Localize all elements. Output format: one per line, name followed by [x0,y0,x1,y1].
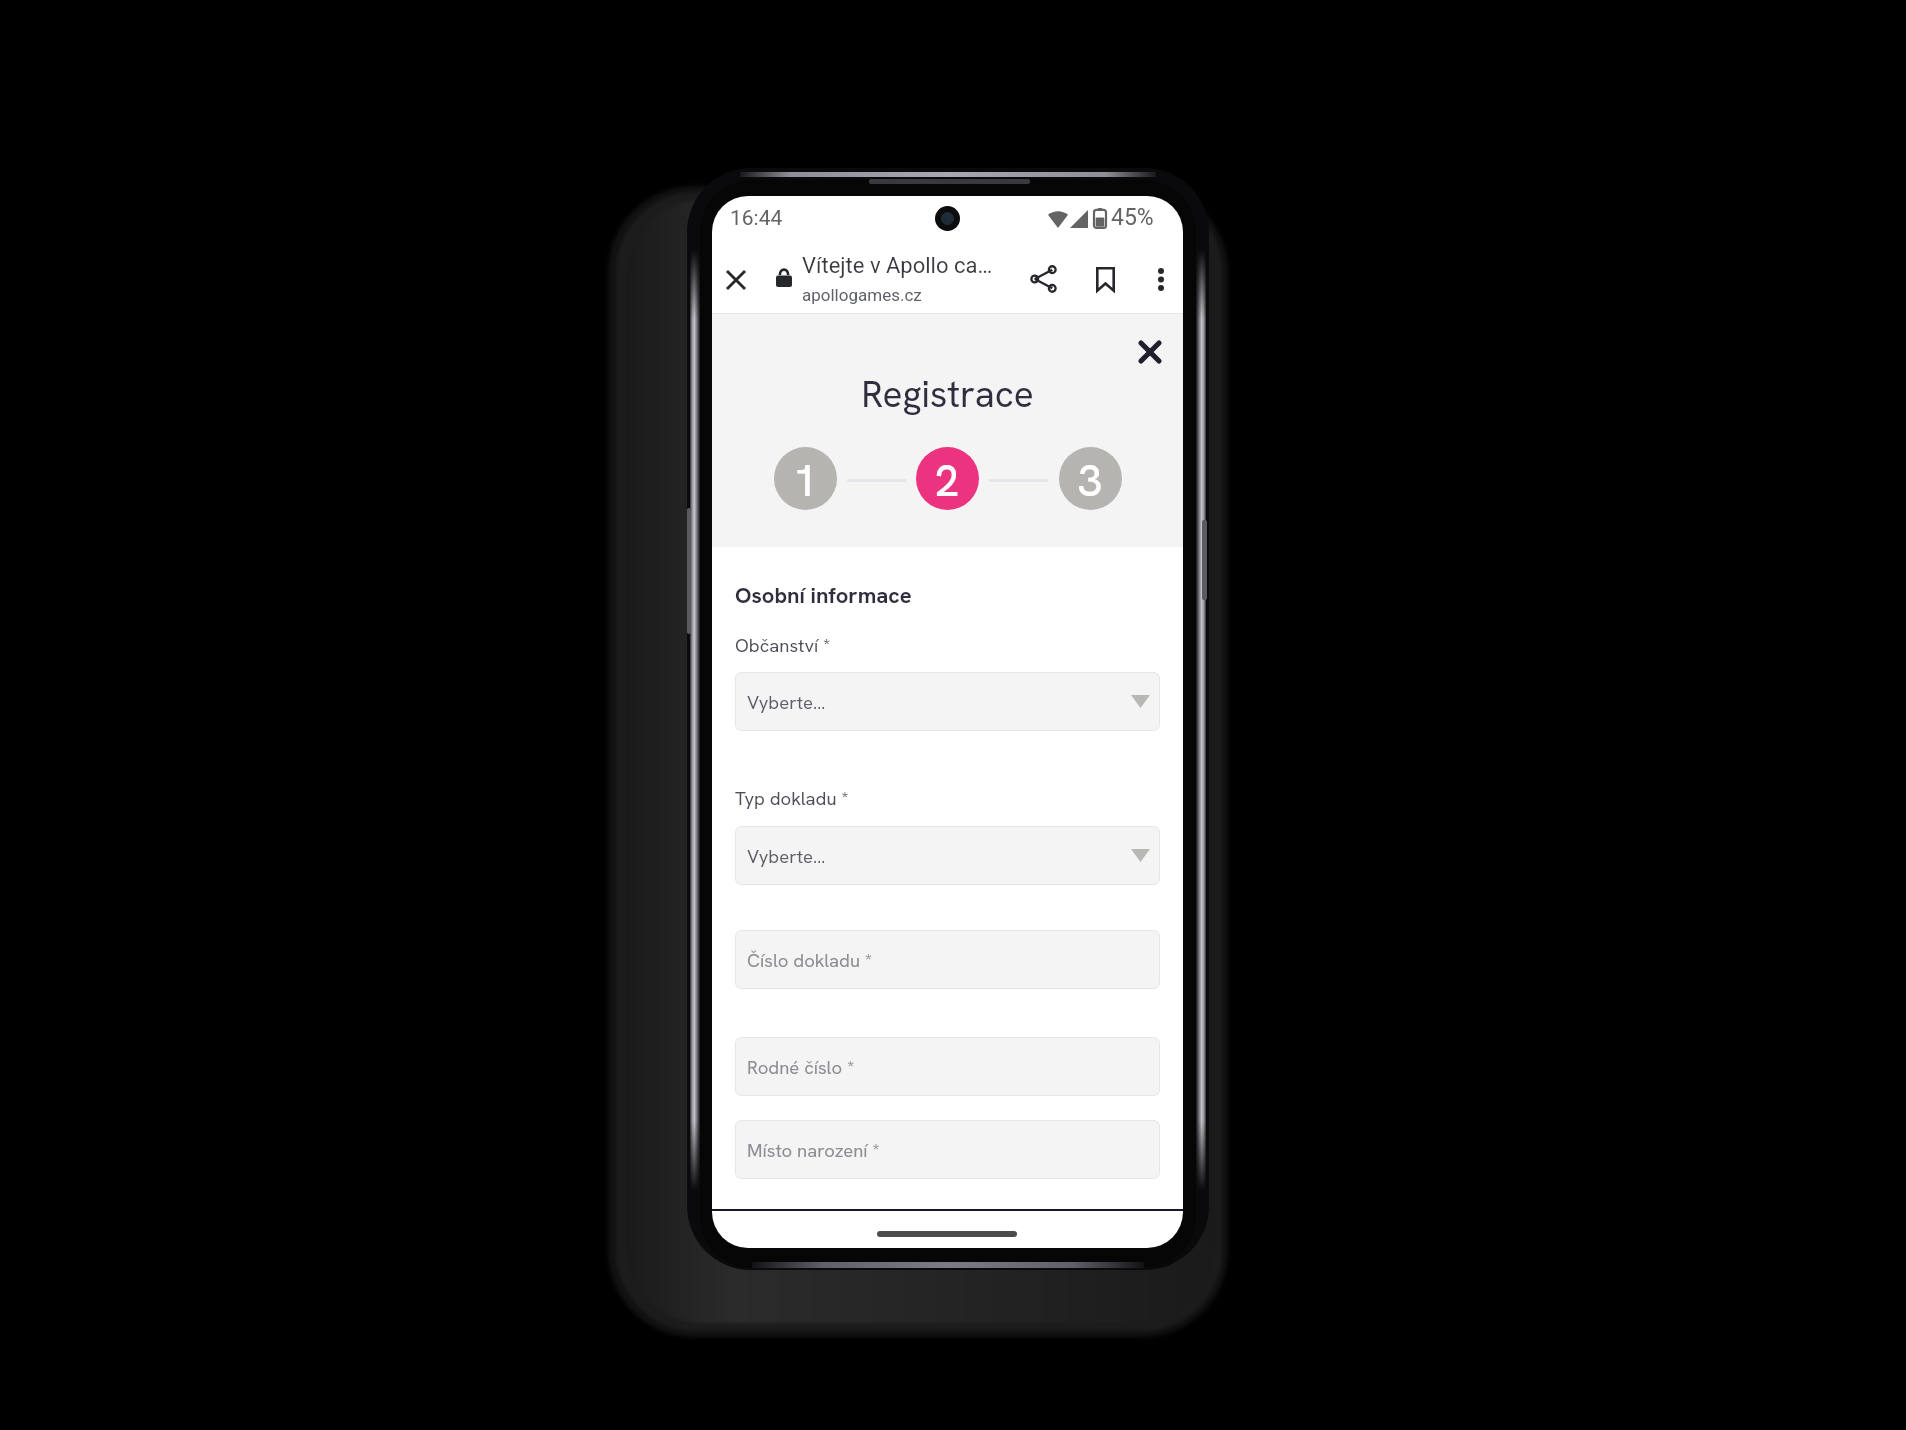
button[interactable]: Místo narození * [735,1120,1160,1179]
staticText: Registrace [712,370,1183,418]
button[interactable]: 2 [916,447,979,510]
button[interactable]: Vyberte… [735,672,1160,731]
staticText: apollogames.cz [802,285,922,305]
button[interactable]: Číslo dokladu * [735,930,1160,989]
staticText: 45% [1111,204,1154,231]
button[interactable]: Share [1020,256,1066,302]
staticText: 3 [1078,453,1103,509]
staticText: Vyberte… [747,690,826,714]
staticText: 16:44 [730,206,783,231]
staticText: 1 [793,453,818,509]
button[interactable]: Close tab [713,257,759,303]
staticText: Místo narození * [747,1138,880,1162]
button[interactable]: 3 [1059,447,1122,510]
button[interactable]: Vyberte… [735,826,1160,885]
staticText: Osobní informace [735,581,912,610]
button[interactable]: Rodné číslo * [735,1037,1160,1096]
staticText: Vítejte v Apollo ca… [802,253,993,279]
button[interactable]: More options [1138,256,1183,302]
staticText: 2 [935,453,960,509]
staticText: Rodné číslo * [747,1055,855,1079]
button[interactable]: Close [1128,330,1172,374]
staticText: Vyberte… [747,844,826,868]
staticText: Číslo dokladu * [747,948,873,972]
button[interactable]: Bookmark [1082,256,1128,302]
button[interactable]: 1 [774,447,837,510]
staticText: Typ dokladu * [735,786,849,810]
staticText: Občanství * [735,633,831,657]
